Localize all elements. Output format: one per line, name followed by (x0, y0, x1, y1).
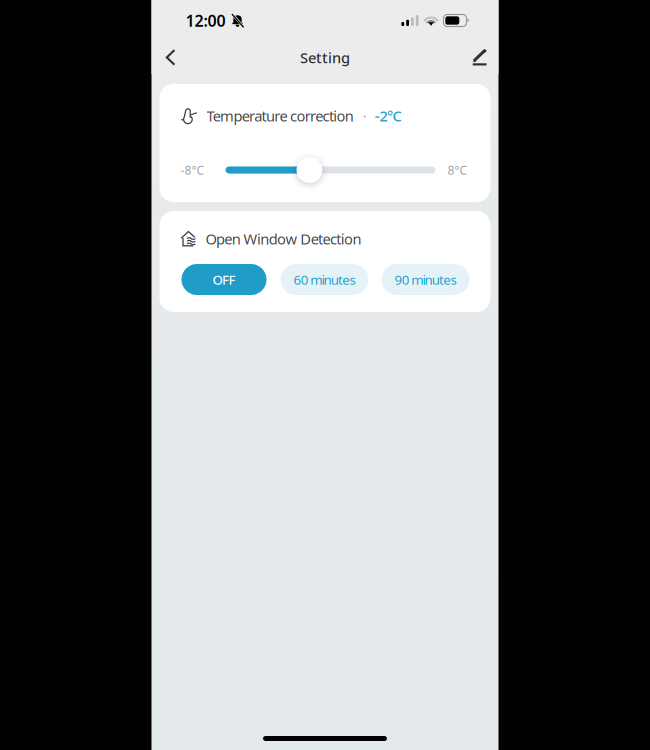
button[interactable]: OFF (181, 264, 266, 295)
staticText: Temperature correction (206, 106, 354, 125)
staticText: -2°C (375, 106, 402, 125)
staticText: -8°C (180, 162, 204, 178)
staticText: · (363, 106, 367, 125)
button[interactable]: 90 minutes (381, 264, 469, 295)
staticText: 60 minutes (294, 271, 355, 288)
button[interactable]: Edit (457, 41, 498, 73)
staticText: 12:00 (185, 10, 225, 31)
staticText: 8°C (447, 162, 467, 178)
button[interactable]: 60 minutes (280, 264, 368, 295)
staticText: 90 minutes (395, 271, 456, 288)
button[interactable]: Back (151, 41, 195, 73)
staticText: Open Window Detection (205, 229, 361, 248)
staticText: Setting (300, 48, 350, 67)
staticText: OFF (212, 271, 235, 288)
